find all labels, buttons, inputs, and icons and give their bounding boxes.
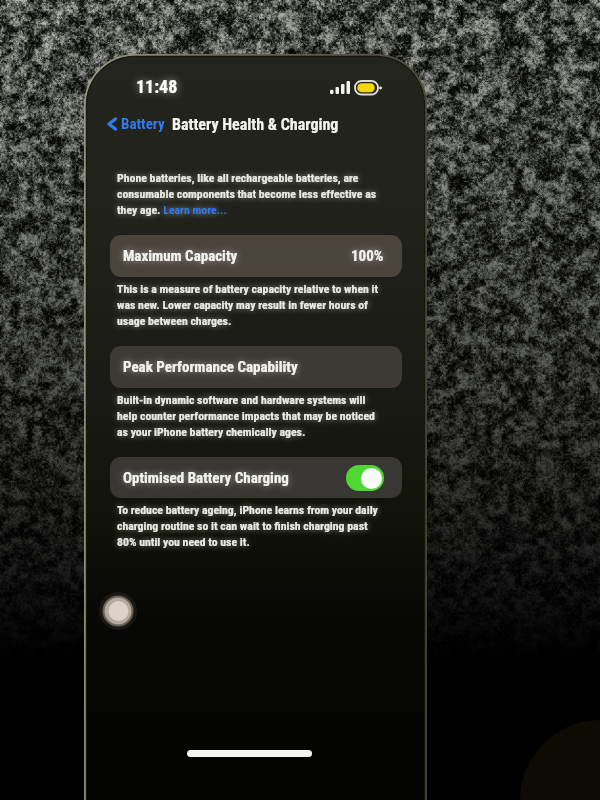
- staticText: This is a measure of battery capacity re…: [117, 282, 379, 328]
- button[interactable]: Maximum Capacity: [110, 235, 402, 277]
- staticText: Maximum Capacity: [123, 247, 238, 265]
- staticText: 100%: [351, 247, 384, 265]
- staticText: Phone batteries, like all rechargeable b…: [117, 171, 377, 217]
- staticText: Battery Health & Charging: [172, 115, 339, 134]
- button[interactable]: Peak Performance Capability: [110, 346, 402, 388]
- staticText: Peak Performance Capability: [123, 358, 298, 376]
- staticText: 11:48: [136, 76, 178, 97]
- staticText: Built-in dynamic software and hardware s…: [117, 393, 375, 439]
- button[interactable]: Optimised Battery Charging toggle: [346, 465, 384, 491]
- staticText: Optimised Battery Charging: [123, 469, 289, 487]
- staticText: To reduce battery ageing, iPhone learns …: [117, 503, 378, 549]
- button[interactable]: Optimised Battery Charging: [110, 457, 402, 498]
- button[interactable]: Battery: [106, 115, 165, 133]
- staticText: Battery: [121, 115, 165, 133]
